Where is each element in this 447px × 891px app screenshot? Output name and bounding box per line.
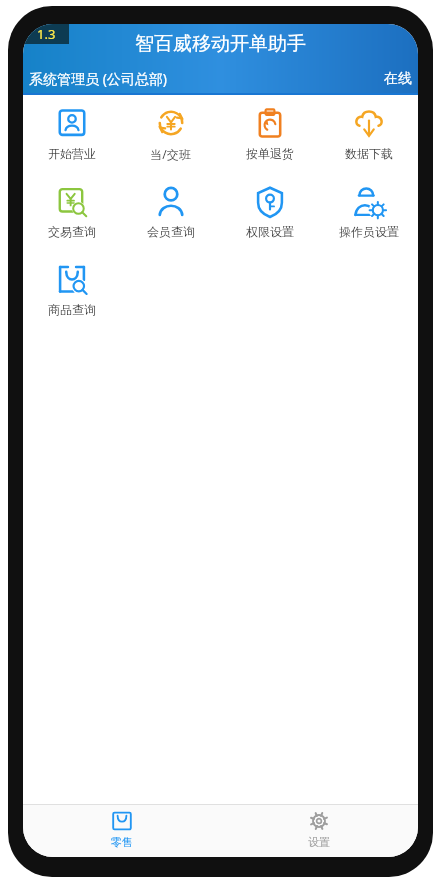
staticText: 权限设置 bbox=[246, 224, 294, 239]
staticText: 会员查询 bbox=[147, 224, 195, 239]
button[interactable]: 交易查询 bbox=[23, 179, 121, 257]
staticText: 智百威移动开单助手 bbox=[135, 32, 306, 56]
button[interactable]: 设置 bbox=[220, 805, 418, 857]
staticText: 系统管理员 (公司总部) bbox=[29, 69, 168, 88]
button[interactable]: 数据下载 bbox=[319, 101, 418, 179]
staticText: 在线 bbox=[384, 70, 412, 88]
staticText: 当/交班 bbox=[150, 146, 191, 162]
staticText: 交易查询 bbox=[48, 224, 96, 239]
staticText: 按单退货 bbox=[246, 146, 294, 161]
staticText: 零售 bbox=[111, 835, 133, 849]
staticText: 1.3 bbox=[37, 25, 56, 43]
button[interactable]: 在线 bbox=[384, 70, 412, 88]
staticText: 设置 bbox=[308, 835, 330, 849]
staticText: 数据下载 bbox=[345, 146, 393, 161]
staticText: 开始营业 bbox=[48, 146, 96, 161]
staticText: 操作员设置 bbox=[339, 224, 399, 239]
button[interactable]: 按单退货 bbox=[220, 101, 319, 179]
button[interactable]: 商品查询 bbox=[23, 257, 121, 335]
button[interactable]: 当/交班 bbox=[121, 101, 220, 179]
staticText: 商品查询 bbox=[48, 302, 96, 317]
button[interactable]: 零售 bbox=[23, 805, 220, 857]
button[interactable]: 权限设置 bbox=[220, 179, 319, 257]
button[interactable]: 开始营业 bbox=[23, 101, 121, 179]
button[interactable]: 操作员设置 bbox=[319, 179, 418, 257]
button[interactable]: 会员查询 bbox=[121, 179, 220, 257]
